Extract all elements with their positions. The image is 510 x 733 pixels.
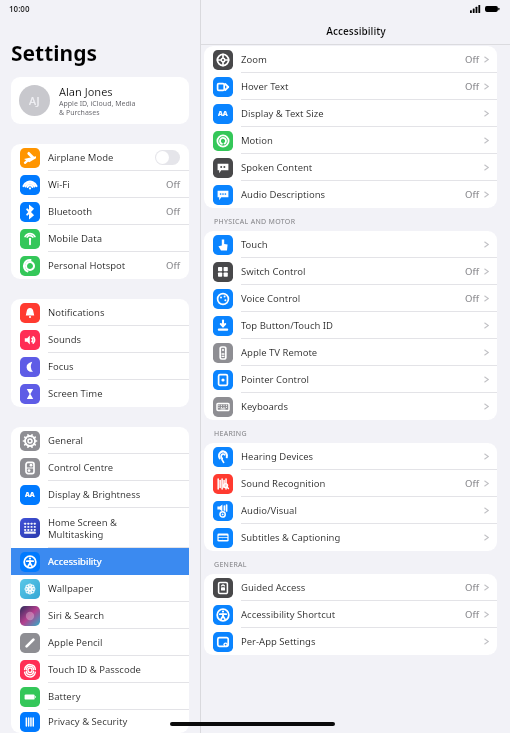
button[interactable]: Accessibility Shortcut (204, 601, 497, 628)
button[interactable]: Control Centre (11, 454, 189, 481)
staticText: Guided Access (241, 581, 465, 594)
staticText: AJ (29, 93, 40, 108)
staticText: Audio/Visual (241, 504, 484, 517)
staticText: Spoken Content (241, 161, 484, 174)
staticText: Off (465, 265, 479, 278)
staticText: Motion (241, 134, 484, 147)
button[interactable]: Privacy & Security (11, 710, 189, 733)
button[interactable]: Switch Control (204, 258, 497, 285)
staticText: Off (166, 259, 180, 272)
button[interactable]: Per-App Settings (204, 628, 497, 655)
staticText: Hearing Devices (241, 450, 484, 463)
staticText: Wallpaper (48, 582, 180, 595)
button[interactable]: Accessibility (11, 548, 189, 575)
staticText: Bluetooth (48, 205, 166, 218)
staticText: Battery (48, 690, 180, 703)
staticText: Off (166, 178, 180, 191)
button[interactable]: Home Screen & Multitasking (11, 508, 189, 548)
button[interactable]: Motion (204, 127, 497, 154)
button[interactable]: Keyboards (204, 393, 497, 420)
staticText: Apple Pencil (48, 636, 180, 649)
button[interactable]: Subtitles & Captioning (204, 524, 497, 551)
staticText: Control Centre (48, 461, 180, 474)
staticText: Settings (11, 39, 98, 68)
staticText: Accessibility Shortcut (241, 608, 465, 621)
staticText: Off (465, 292, 479, 305)
staticText: General (48, 434, 180, 447)
staticText: Subtitles & Captioning (241, 531, 484, 544)
button[interactable]: Wi-Fi (11, 171, 189, 198)
button[interactable]: Guided Access (204, 574, 497, 601)
button[interactable]: Sounds (11, 326, 189, 353)
button[interactable]: Mobile Data (11, 225, 189, 252)
button[interactable]: Top Button/Touch ID (204, 312, 497, 339)
staticText: AA (218, 109, 228, 119)
button[interactable]: Sound Recognition (204, 470, 497, 497)
button[interactable]: Airplane Mode toggle, off (155, 150, 180, 165)
button[interactable]: Notifications (11, 299, 189, 326)
staticText: Top Button/Touch ID (241, 319, 484, 332)
staticText: Touch ID & Passcode (48, 663, 180, 676)
staticText: Hover Text (241, 80, 465, 93)
button[interactable]: Hover Text (204, 73, 497, 100)
button[interactable]: Pointer Control (204, 366, 497, 393)
button[interactable]: Airplane Mode (11, 144, 189, 171)
staticText: Display & Text Size (241, 107, 484, 120)
staticText: Apple ID, iCloud, Media & Purchases (59, 99, 136, 117)
staticText: Wi-Fi (48, 178, 166, 191)
staticText: Airplane Mode (48, 151, 155, 164)
staticText: HEARING (214, 429, 247, 439)
button[interactable]: Bluetooth (11, 198, 189, 225)
staticText: Per-App Settings (241, 635, 484, 648)
staticText: Audio Descriptions (241, 188, 465, 201)
button[interactable]: Apple Pencil (11, 629, 189, 656)
button[interactable]: Audio Descriptions (204, 181, 497, 208)
staticText: GENERAL (214, 560, 247, 570)
staticText: Personal Hotspot (48, 259, 166, 272)
staticText: Pointer Control (241, 373, 484, 386)
staticText: Voice Control (241, 292, 465, 305)
staticText: Apple TV Remote (241, 346, 484, 359)
staticText: Mobile Data (48, 232, 180, 245)
staticText: Home Screen & Multitasking (48, 516, 180, 541)
staticText: Off (465, 581, 479, 594)
staticText: Accessibility (48, 555, 180, 568)
staticText: Screen Time (48, 387, 180, 400)
staticText: AA (25, 490, 35, 500)
staticText: Off (465, 53, 479, 66)
button[interactable]: Wallpaper (11, 575, 189, 602)
button[interactable]: General (11, 427, 189, 454)
staticText: Siri & Search (48, 609, 180, 622)
staticText: Off (465, 188, 479, 201)
staticText: Keyboards (241, 400, 484, 413)
staticText: Switch Control (241, 265, 465, 278)
staticText: Zoom (241, 53, 465, 66)
staticText: Accessibility (326, 24, 386, 38)
staticText: Off (465, 608, 479, 621)
button[interactable]: AJ (11, 77, 189, 124)
button[interactable]: Audio/Visual (204, 497, 497, 524)
button[interactable]: AA (204, 100, 497, 127)
staticText: Off (465, 80, 479, 93)
button[interactable]: Siri & Search (11, 602, 189, 629)
button[interactable]: AA (11, 481, 189, 508)
staticText: Alan Jones (59, 84, 113, 99)
staticText: Sound Recognition (241, 477, 465, 490)
button[interactable]: Apple TV Remote (204, 339, 497, 366)
button[interactable]: Hearing Devices (204, 443, 497, 470)
staticText: Focus (48, 360, 180, 373)
staticText: 10:00 (9, 3, 30, 14)
staticText: Off (465, 477, 479, 490)
staticText: Display & Brightness (48, 488, 180, 501)
button[interactable]: Spoken Content (204, 154, 497, 181)
button[interactable]: Focus (11, 353, 189, 380)
button[interactable]: Screen Time (11, 380, 189, 407)
button[interactable]: Personal Hotspot (11, 252, 189, 279)
button[interactable]: Touch (204, 231, 497, 258)
staticText: Notifications (48, 306, 180, 319)
staticText: Sounds (48, 333, 180, 346)
button[interactable]: Voice Control (204, 285, 497, 312)
button[interactable]: Zoom (204, 46, 497, 73)
button[interactable]: Touch ID & Passcode (11, 656, 189, 683)
button[interactable]: Battery (11, 683, 189, 710)
